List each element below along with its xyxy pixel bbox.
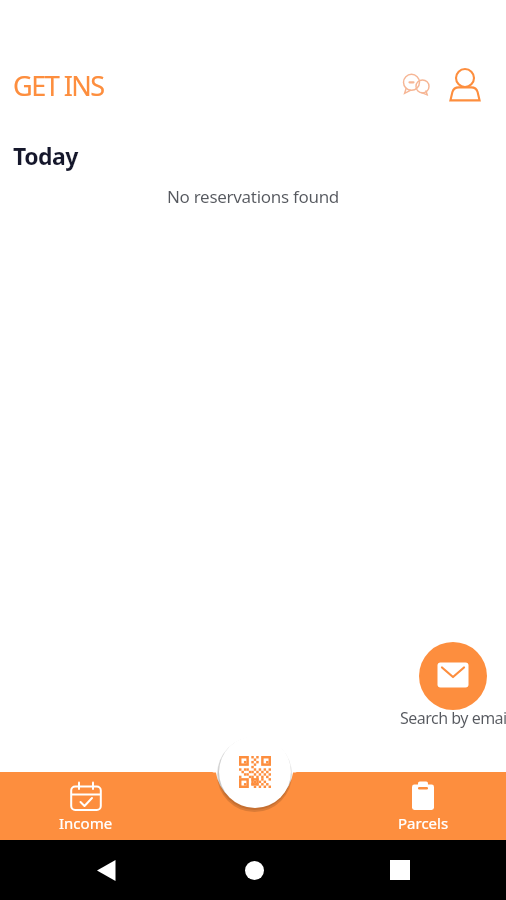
button[interactable]: Income — [46, 772, 126, 840]
staticText: No reservations found — [0, 185, 506, 208]
button[interactable]: Profile — [442, 61, 487, 106]
staticText: Income — [59, 813, 113, 833]
staticText: Parcels — [398, 813, 449, 833]
button[interactable]: Chat — [394, 64, 438, 108]
staticText: GET INS — [13, 67, 104, 104]
staticText: Search by email — [400, 707, 506, 729]
button[interactable]: Home — [234, 850, 274, 890]
staticText: Today — [13, 140, 78, 171]
button[interactable]: Recent apps — [380, 850, 420, 890]
button[interactable]: Search by email — [419, 642, 487, 710]
button[interactable]: Back — [86, 850, 126, 890]
button[interactable]: Parcels — [383, 772, 463, 840]
button[interactable]: Scan QR code — [214, 731, 295, 812]
